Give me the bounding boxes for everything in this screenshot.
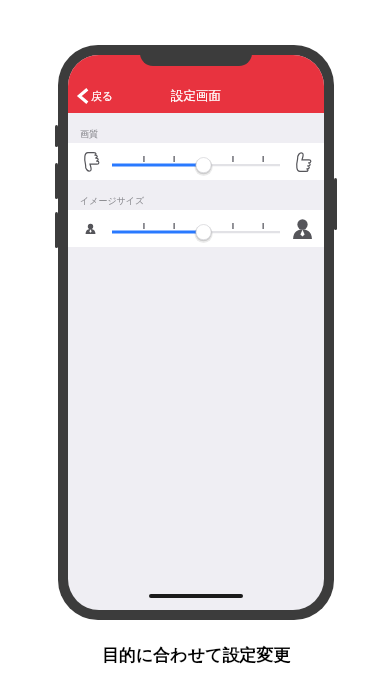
button[interactable]: Low quality [68, 143, 112, 180]
button[interactable] [112, 143, 280, 180]
staticText: 戻る [91, 89, 114, 103]
button[interactable]: Small image [68, 210, 112, 247]
staticText: 画質 [80, 128, 98, 139]
staticText: 設定画面 [171, 88, 221, 104]
button[interactable]: High quality [280, 143, 324, 180]
staticText: 目的に合わせて設定変更 [0, 645, 392, 666]
button[interactable]: Large image [280, 210, 324, 247]
button[interactable] [112, 210, 280, 247]
button[interactable]: 戻る [74, 84, 118, 108]
staticText: イメージサイズ [80, 195, 145, 206]
